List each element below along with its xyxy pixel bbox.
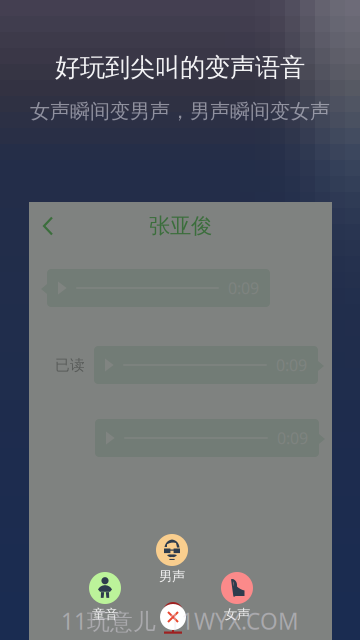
staticText: 男声 <box>159 568 185 584</box>
staticText: 童音 <box>92 606 118 622</box>
button[interactable]: Back <box>29 203 68 248</box>
button[interactable]: 男声 <box>148 534 196 584</box>
staticText: 11玩意儿 11WYX.COM <box>61 606 299 636</box>
button[interactable]: 女声 <box>213 572 261 622</box>
staticText: 0:09 <box>277 427 308 449</box>
staticText: 0:09 <box>228 277 259 299</box>
staticText: 好玩到尖叫的变声语音 <box>55 52 305 83</box>
staticText: 女声瞬间变男声，男声瞬间变女声 <box>30 99 330 124</box>
staticText: 张亚俊 <box>149 213 212 239</box>
staticText: 0:09 <box>276 354 307 376</box>
button[interactable]: 童音 <box>81 572 129 622</box>
button[interactable]: Close <box>160 597 186 637</box>
staticText: 女声 <box>224 606 250 622</box>
staticText: 已读 <box>55 356 85 374</box>
